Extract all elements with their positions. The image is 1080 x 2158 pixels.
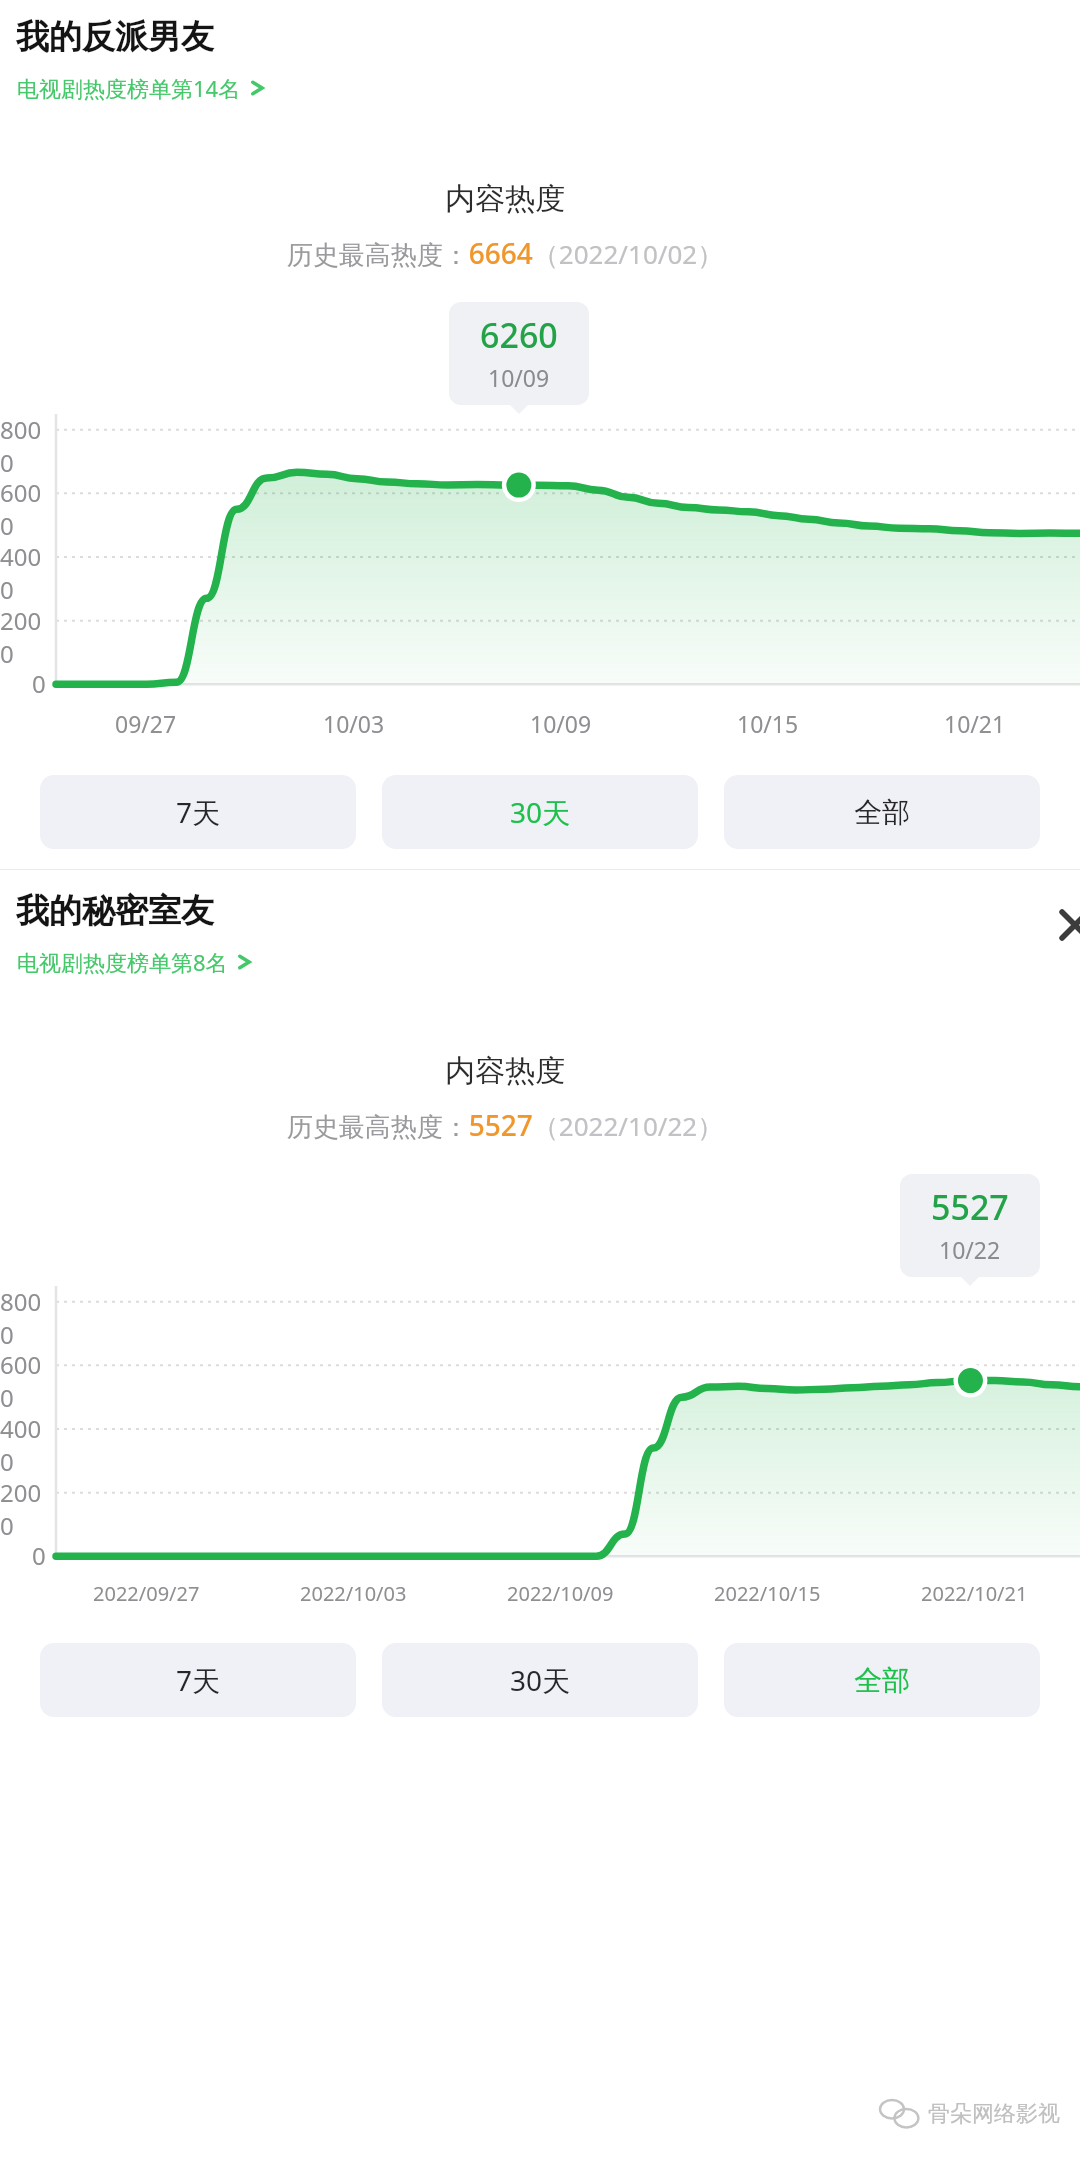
- staticText: 历史最高热度：6664（2022/10/02）: [0, 234, 1010, 272]
- staticText: 10/09: [488, 362, 550, 393]
- staticText: 电视剧热度榜单第14名: [17, 73, 241, 103]
- button[interactable]: 全部: [724, 1643, 1040, 1717]
- button[interactable]: Close: [1048, 898, 1080, 952]
- staticText: 2022/10/21: [921, 1580, 1028, 1607]
- staticText: 7天: [176, 1661, 221, 1699]
- staticText: 10/03: [323, 708, 385, 739]
- staticText: 5527: [931, 1184, 1009, 1230]
- button[interactable]: 7天: [40, 1643, 356, 1717]
- staticText: 8000: [0, 1285, 46, 1351]
- staticText: 内容热度: [0, 180, 1010, 218]
- staticText: 4000: [0, 1412, 46, 1478]
- staticText: 10/22: [939, 1234, 1001, 1265]
- staticText: 骨朵网络影视: [928, 2100, 1060, 2128]
- staticText: 全部: [854, 1663, 910, 1698]
- staticText: 电视剧热度榜单第8名: [17, 947, 228, 977]
- button[interactable]: 电视剧热度榜单第14名: [16, 70, 265, 106]
- button[interactable]: 30天: [382, 1643, 698, 1717]
- staticText: 2000: [0, 604, 46, 670]
- staticText: 8000: [0, 413, 46, 479]
- staticText: 6000: [0, 476, 46, 542]
- staticText: 10/09: [530, 708, 592, 739]
- staticText: 6000: [0, 1348, 46, 1414]
- button[interactable]: 7天: [40, 775, 356, 849]
- staticText: 09/27: [115, 708, 177, 739]
- staticText: 我的反派男友: [16, 16, 214, 58]
- staticText: 10/21: [944, 708, 1006, 739]
- staticText: 7天: [176, 793, 221, 831]
- staticText: 6260: [480, 312, 558, 358]
- staticText: 全部: [854, 795, 910, 830]
- staticText: 我的秘密室友: [16, 890, 214, 932]
- button[interactable]: 30天: [382, 775, 698, 849]
- staticText: 0: [32, 667, 46, 700]
- staticText: 2022/10/15: [714, 1580, 821, 1607]
- button[interactable]: 电视剧热度榜单第8名: [16, 944, 252, 980]
- button[interactable]: 全部: [724, 775, 1040, 849]
- staticText: 2022/10/03: [300, 1580, 407, 1607]
- staticText: 历史最高热度：5527（2022/10/22）: [0, 1106, 1010, 1144]
- staticText: 2022/09/27: [93, 1580, 200, 1607]
- staticText: 2000: [0, 1476, 46, 1542]
- staticText: 30天: [510, 1661, 571, 1699]
- staticText: 内容热度: [0, 1052, 1010, 1090]
- staticText: 0: [32, 1539, 46, 1572]
- staticText: 4000: [0, 540, 46, 606]
- staticText: 30天: [510, 793, 571, 831]
- staticText: 10/15: [737, 708, 799, 739]
- staticText: 2022/10/09: [507, 1580, 614, 1607]
